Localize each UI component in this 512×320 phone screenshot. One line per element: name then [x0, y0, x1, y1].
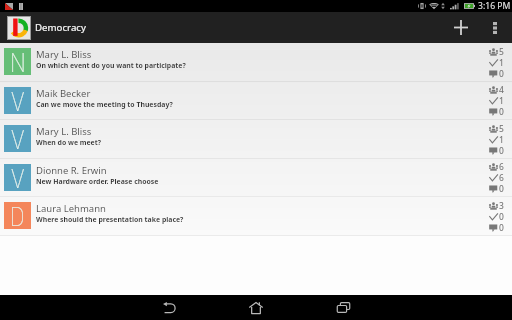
button[interactable]: Back: [139, 295, 199, 320]
staticText: 0: [499, 211, 504, 222]
button[interactable]: V: [0, 82, 512, 119]
staticText: 5: [499, 46, 504, 57]
staticText: Where should the presentation take place…: [36, 215, 184, 224]
staticText: Maik Becker: [36, 87, 91, 100]
button[interactable]: D: [0, 197, 512, 235]
staticText: V: [11, 87, 25, 114]
staticText: 4: [499, 84, 504, 95]
staticText: New Hardware order. Please choose: [36, 177, 159, 186]
button[interactable]: V: [0, 159, 512, 196]
button[interactable]: Recent apps: [313, 295, 373, 320]
staticText: 1: [499, 57, 504, 68]
staticText: 6: [499, 172, 504, 183]
staticText: Mary L. Bliss: [36, 48, 92, 61]
staticText: 0: [499, 222, 504, 233]
staticText: 0: [499, 145, 504, 156]
button[interactable]: Add: [445, 12, 477, 43]
staticText: 1: [499, 134, 504, 145]
staticText: 1: [499, 95, 504, 106]
staticText: 0: [499, 68, 504, 79]
staticText: 3:16 PM: [478, 0, 511, 12]
staticText: On which event do you want to participat…: [36, 61, 186, 70]
staticText: Can we move the meeting to Thuesday?: [36, 100, 173, 109]
staticText: 6: [499, 161, 504, 172]
button[interactable]: Home: [226, 295, 286, 320]
staticText: 3: [499, 200, 504, 211]
staticText: V: [11, 164, 25, 191]
staticText: 5: [499, 123, 504, 134]
staticText: N: [10, 48, 26, 75]
staticText: 0: [499, 106, 504, 117]
staticText: Democracy: [35, 21, 86, 34]
staticText: When do we meet?: [36, 138, 102, 147]
button[interactable]: More options: [481, 14, 509, 42]
staticText: 0: [499, 183, 504, 194]
button[interactable]: N: [0, 43, 512, 81]
staticText: Dionne R. Erwin: [36, 164, 107, 177]
staticText: Laura Lehmann: [36, 202, 106, 215]
staticText: D: [10, 202, 25, 229]
staticText: V: [11, 125, 25, 152]
button[interactable]: V: [0, 120, 512, 158]
staticText: Mary L. Bliss: [36, 125, 92, 138]
